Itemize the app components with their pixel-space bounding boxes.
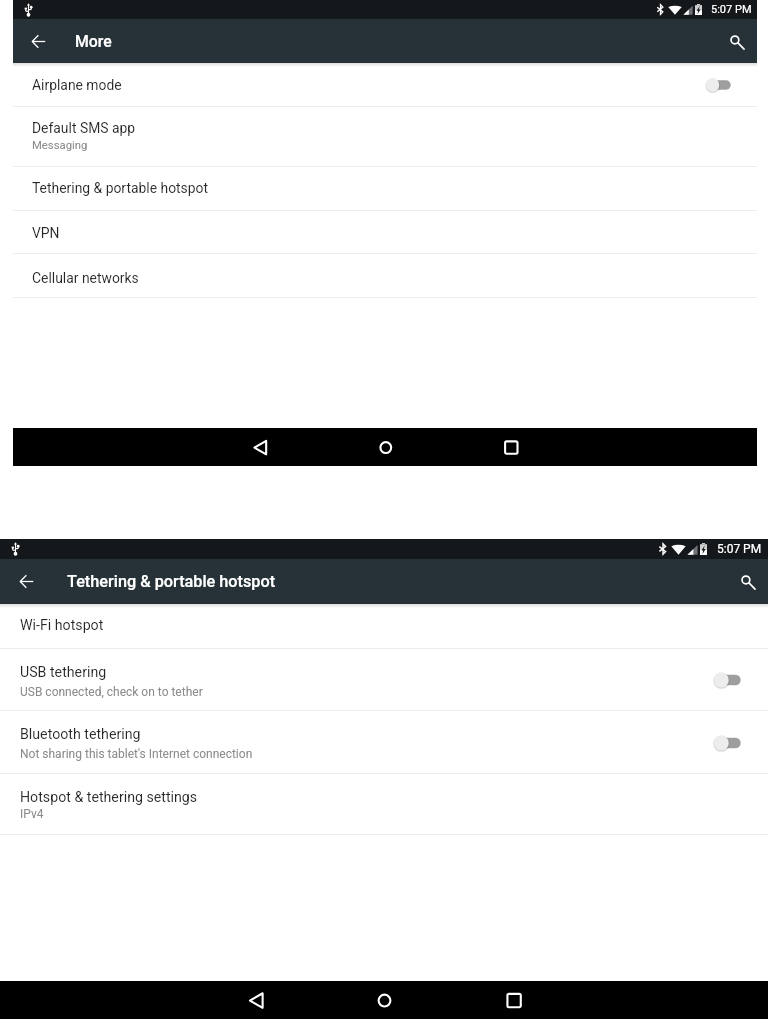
staticText: Cellular networks [32, 270, 139, 286]
staticText: USB connected, check on to tether [20, 685, 203, 699]
staticText: More [75, 32, 112, 51]
button[interactable]: Default SMS app [13, 107, 757, 167]
staticText: 5:07 PM [717, 542, 762, 556]
staticText: IPv4 [20, 807, 44, 821]
staticText: Not sharing this tablet's Internet conne… [20, 747, 253, 761]
staticText: Messaging [32, 139, 88, 152]
staticText: Tethering & portable hotspot [67, 572, 276, 591]
button[interactable]: Tethering & portable hotspot [13, 167, 757, 211]
button[interactable]: Navigate up [0, 559, 53, 604]
button[interactable]: Airplane mode [13, 63, 757, 107]
button[interactable]: Navigate up [13, 20, 64, 63]
button[interactable]: Wi-Fi hotspot [0, 604, 768, 649]
staticText: 5:07 PM [711, 3, 752, 16]
button[interactable]: VPN [13, 211, 757, 254]
staticText: VPN [32, 225, 60, 241]
staticText: Tethering & portable hotspot [32, 180, 209, 196]
staticText: Wi-Fi hotspot [20, 617, 104, 634]
button[interactable]: USB tethering [0, 649, 768, 711]
staticText: USB tethering [20, 664, 107, 681]
staticText: Airplane mode [32, 77, 122, 93]
button[interactable]: Search [728, 559, 768, 604]
button[interactable]: Bluetooth tethering [0, 711, 768, 774]
staticText: Default SMS app [32, 120, 136, 136]
staticText: Bluetooth tethering [20, 726, 141, 743]
button[interactable]: Cellular networks [13, 254, 757, 298]
button[interactable]: Search [717, 20, 757, 63]
staticText: Hotspot & tethering settings [20, 789, 198, 806]
button[interactable]: Hotspot & tethering settings [0, 774, 768, 835]
